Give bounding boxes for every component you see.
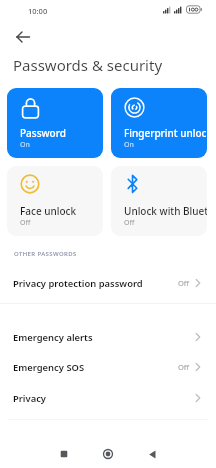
button[interactable]: [88, 440, 128, 468]
staticText: Passwords & security: [13, 55, 163, 75]
button[interactable]: [44, 440, 84, 468]
button[interactable]: Unlock with Bluetooth device: [111, 166, 207, 236]
staticText: Emergency SOS: [13, 361, 85, 374]
staticText: OTHER PASSWORDS: [14, 250, 77, 258]
staticText: On: [124, 140, 134, 150]
staticText: Unlock with Bluetooth device: [124, 204, 207, 218]
staticText: Off: [178, 362, 190, 372]
staticText: Fingerprint unlock: [124, 126, 207, 140]
button[interactable]: Fingerprint unlock: [111, 88, 207, 158]
staticText: Password: [20, 126, 103, 140]
button[interactable]: Privacy: [0, 383, 216, 413]
staticText: Face unlock: [20, 204, 103, 218]
button[interactable]: Emergency alerts: [0, 322, 216, 352]
staticText: Off: [124, 218, 135, 228]
button[interactable]: Privacy protection password: [0, 268, 216, 298]
staticText: Emergency alerts: [13, 331, 93, 344]
button[interactable]: [132, 440, 172, 468]
staticText: On: [20, 140, 30, 150]
staticText: 10:00: [28, 6, 48, 16]
button[interactable]: Face unlock: [7, 166, 103, 236]
staticText: Off: [20, 218, 31, 228]
button[interactable]: Password: [7, 88, 103, 158]
button[interactable]: [10, 27, 36, 47]
staticText: Off: [178, 278, 190, 288]
staticText: Privacy: [13, 392, 46, 405]
staticText: Privacy protection password: [13, 277, 143, 290]
button[interactable]: Emergency SOS: [0, 352, 216, 382]
